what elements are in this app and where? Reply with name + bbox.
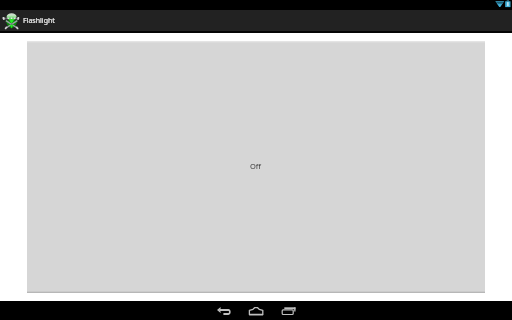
button[interactable]: Recent apps xyxy=(273,301,305,320)
button[interactable]: Flashlight xyxy=(0,10,512,31)
staticText: Off xyxy=(250,161,262,171)
staticText: Flashlight xyxy=(23,16,55,26)
button[interactable]: Home xyxy=(240,301,273,320)
button[interactable]: Back xyxy=(208,301,240,320)
